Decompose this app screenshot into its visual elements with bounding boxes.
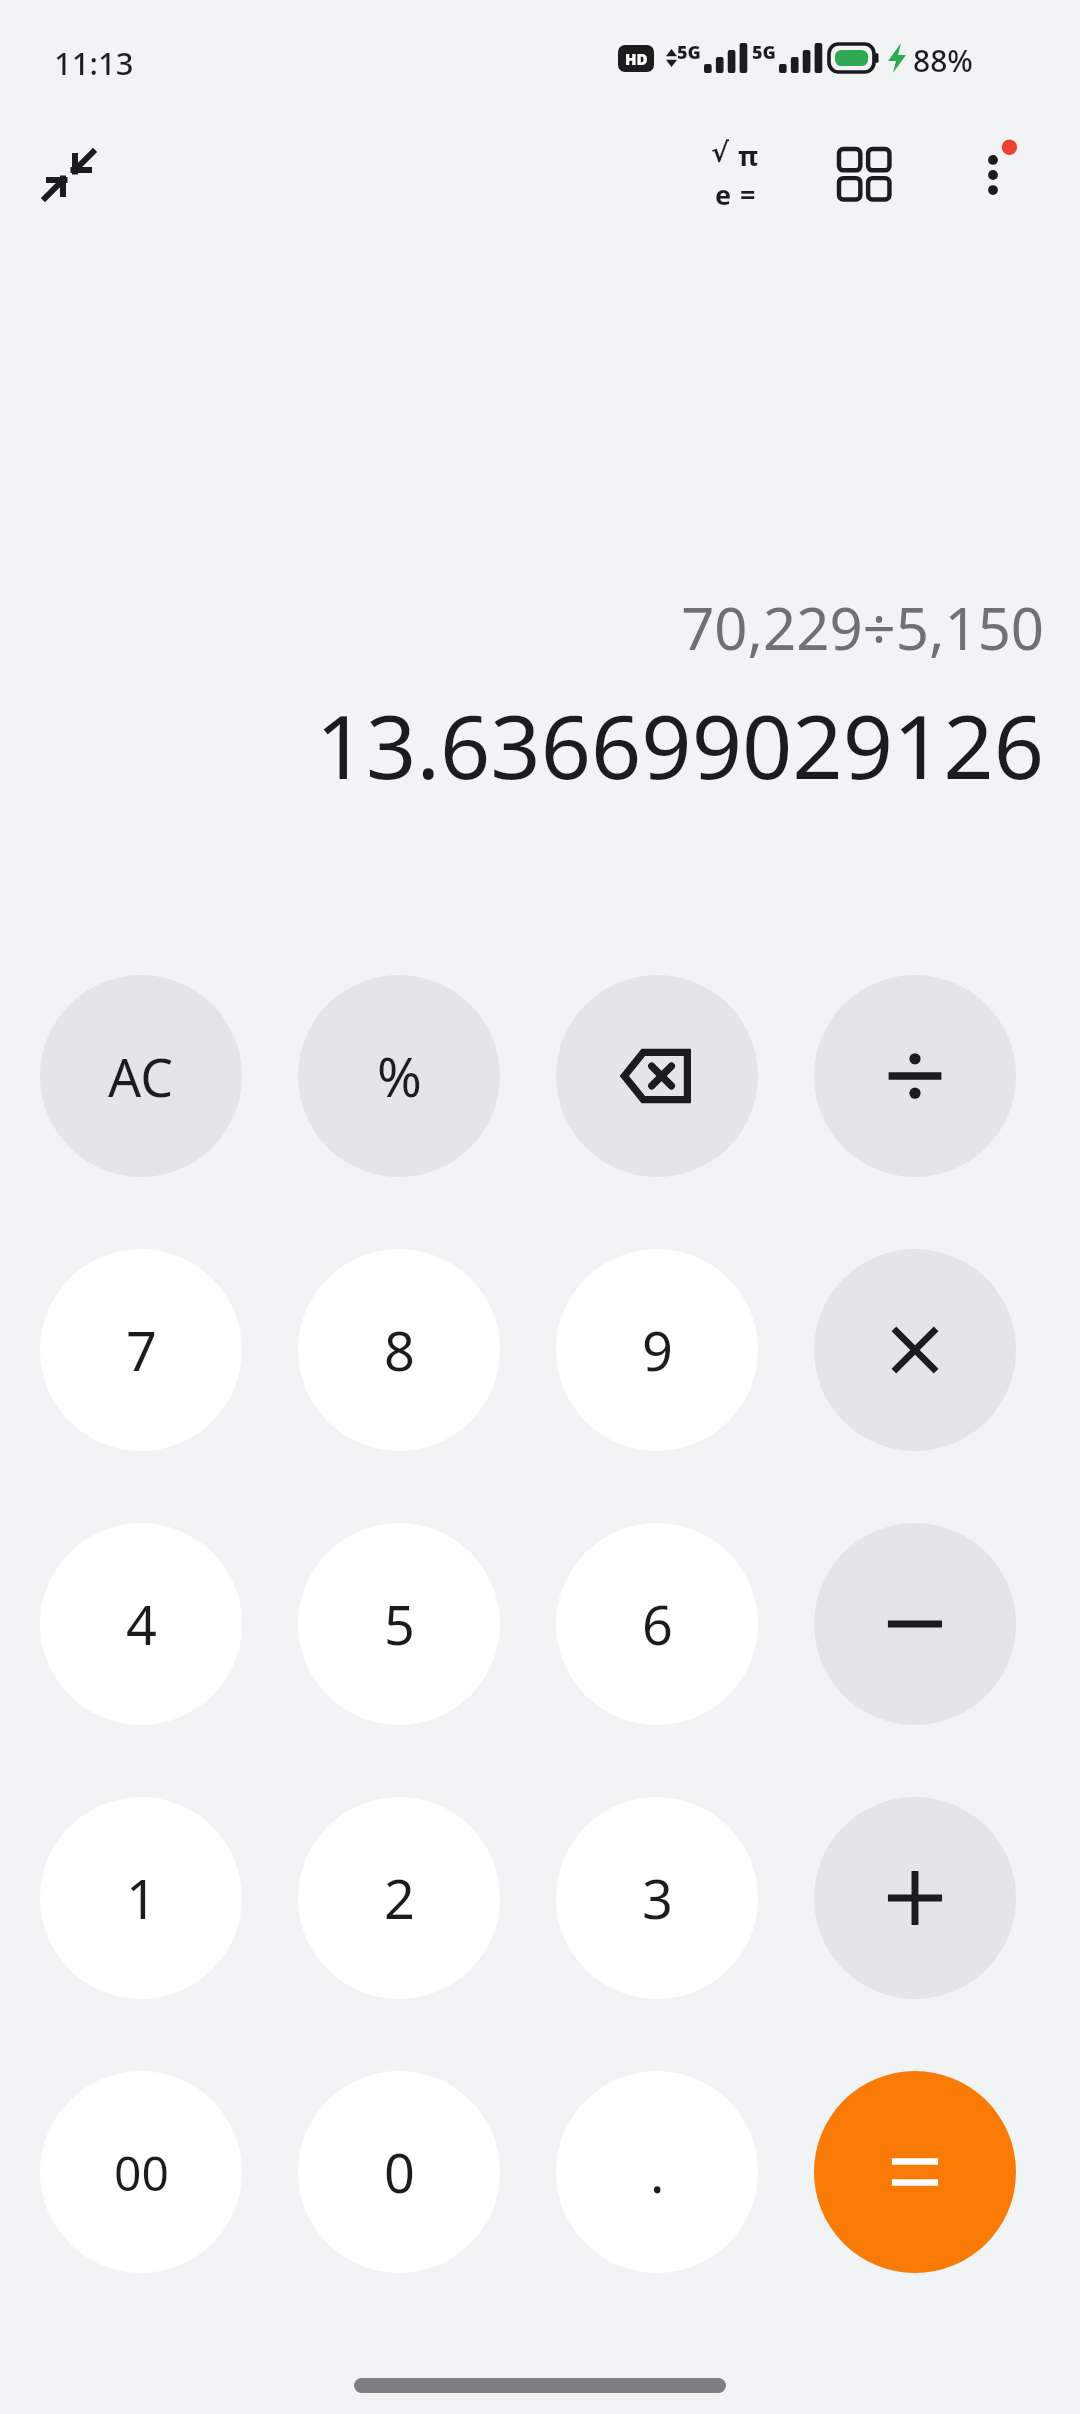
button[interactable]: 2 bbox=[298, 1797, 500, 1999]
button[interactable]: Scientific mode bbox=[688, 128, 782, 222]
staticText: HD bbox=[625, 49, 648, 69]
staticText: e bbox=[715, 176, 732, 213]
staticText: 0 bbox=[384, 2135, 415, 2209]
staticText: 5G bbox=[752, 40, 776, 65]
button[interactable]: More options bbox=[946, 128, 1040, 222]
staticText: 4 bbox=[126, 1587, 157, 1661]
staticText: 3 bbox=[642, 1861, 673, 1935]
button[interactable]: Equals bbox=[814, 2071, 1016, 2273]
button[interactable]: Divide bbox=[814, 975, 1016, 1177]
staticText: 70,229÷5,150 bbox=[681, 588, 1044, 667]
button[interactable]: . bbox=[556, 2071, 758, 2273]
staticText: 00 bbox=[114, 2140, 169, 2205]
staticText: √ bbox=[711, 137, 730, 168]
button[interactable]: Collapse bbox=[24, 130, 114, 220]
button[interactable]: 7 bbox=[40, 1249, 242, 1451]
staticText: 1 bbox=[126, 1861, 157, 1935]
button[interactable]: % bbox=[298, 975, 500, 1177]
button[interactable]: 4 bbox=[40, 1523, 242, 1725]
button[interactable]: 0 bbox=[298, 2071, 500, 2273]
staticText: = bbox=[740, 176, 756, 213]
staticText: π bbox=[738, 137, 759, 174]
button[interactable]: 8 bbox=[298, 1249, 500, 1451]
button[interactable]: 5 bbox=[298, 1523, 500, 1725]
staticText: 13.636699029126 bbox=[315, 685, 1044, 805]
button[interactable]: Multiply bbox=[814, 1249, 1016, 1451]
staticText: 7 bbox=[126, 1313, 157, 1387]
staticText: 6 bbox=[642, 1587, 673, 1661]
button[interactable]: 00 bbox=[40, 2071, 242, 2273]
button[interactable]: 6 bbox=[556, 1523, 758, 1725]
staticText: 2 bbox=[384, 1861, 415, 1935]
button[interactable]: 9 bbox=[556, 1249, 758, 1451]
button[interactable]: AC bbox=[40, 975, 242, 1177]
staticText: . bbox=[650, 2135, 665, 2209]
staticText: 9 bbox=[642, 1313, 673, 1387]
staticText: 5 bbox=[384, 1587, 415, 1661]
staticText: % bbox=[377, 1039, 422, 1113]
button[interactable]: 3 bbox=[556, 1797, 758, 1999]
staticText: 11:13 bbox=[54, 42, 134, 84]
button[interactable]: Backspace bbox=[556, 975, 758, 1177]
button[interactable]: 1 bbox=[40, 1797, 242, 1999]
button[interactable]: Calculation history bbox=[818, 128, 912, 222]
staticText: 5G bbox=[677, 40, 701, 65]
staticText: 88% bbox=[913, 40, 973, 76]
staticText: AC bbox=[108, 1041, 174, 1112]
button[interactable]: Add bbox=[814, 1797, 1016, 1999]
button[interactable]: Subtract bbox=[814, 1523, 1016, 1725]
staticText: 8 bbox=[384, 1313, 415, 1387]
